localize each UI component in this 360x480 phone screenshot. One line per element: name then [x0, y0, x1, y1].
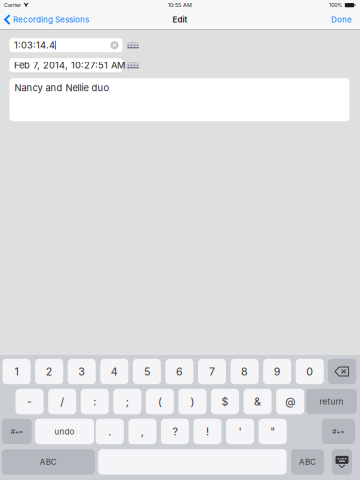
staticText: - [27, 395, 32, 408]
staticText: 1:03:14.4 [14, 40, 55, 51]
staticText: 10:55 AM [168, 2, 192, 8]
staticText: : [93, 395, 96, 408]
button[interactable]: 8 [231, 359, 259, 384]
staticText: Done [331, 15, 352, 24]
staticText: ! [206, 425, 209, 438]
button[interactable]: ! [193, 419, 221, 444]
button[interactable]: return [306, 389, 357, 414]
staticText: undo [54, 427, 74, 436]
staticText: Carrier [4, 2, 21, 8]
button[interactable]: 5 [133, 359, 161, 384]
button[interactable]: , [128, 419, 156, 444]
staticText: $ [221, 395, 228, 408]
button[interactable]: ? [161, 419, 189, 444]
staticText: ABC [299, 457, 316, 467]
staticText: 4 [111, 365, 118, 378]
staticText: ? [172, 425, 177, 438]
button[interactable]: 3 [68, 359, 96, 384]
staticText: 1 [15, 365, 19, 378]
button[interactable]: Dismiss keyboard [332, 449, 352, 475]
button[interactable]: ' [226, 419, 254, 444]
staticText: @ [285, 395, 295, 408]
button[interactable]: ABC [2, 449, 95, 475]
button[interactable]: 0 [296, 359, 324, 384]
button[interactable]: - [16, 389, 44, 414]
button[interactable]: Recording Sessions [0, 10, 95, 29]
button[interactable]: ABC [291, 449, 324, 475]
button[interactable]: Done [323, 10, 360, 29]
staticText: Nancy and Nellie duo [14, 82, 109, 93]
staticText: return [319, 397, 343, 406]
staticText: , [141, 425, 144, 438]
staticText: 6 [176, 365, 183, 378]
staticText: ) [190, 395, 194, 408]
button[interactable]: & [244, 389, 272, 414]
staticText: ' [239, 425, 242, 438]
staticText: 9 [274, 365, 281, 378]
staticText: ABC [40, 457, 57, 467]
staticText: / [60, 395, 64, 408]
staticText: 0 [306, 365, 313, 378]
staticText: ; [126, 395, 129, 408]
button[interactable]: / [48, 389, 76, 414]
button[interactable]: ( [146, 389, 174, 414]
button[interactable]: @ [276, 389, 304, 414]
staticText: 7 [209, 365, 215, 378]
staticText: ( [158, 395, 162, 408]
button[interactable]: " [259, 419, 287, 444]
staticText: 2 [46, 365, 53, 378]
button[interactable]: 1 [3, 359, 31, 384]
button[interactable]: ) [178, 389, 206, 414]
button[interactable]: Symbols [2, 419, 32, 444]
button[interactable]: . [96, 419, 124, 444]
button[interactable]: ; [113, 389, 141, 414]
button[interactable]: Symbols [322, 419, 355, 444]
staticText: Recording Sessions [13, 15, 89, 24]
staticText: . [108, 425, 111, 438]
staticText: 5 [144, 365, 150, 378]
staticText: #+= [11, 427, 23, 436]
button[interactable]: 4 [100, 359, 128, 384]
button[interactable]: 6 [165, 359, 193, 384]
button[interactable]: undo [35, 419, 94, 444]
staticText: 8 [241, 365, 248, 378]
staticText: #+= [332, 427, 344, 436]
button[interactable]: 7 [198, 359, 226, 384]
staticText: & [254, 395, 261, 408]
button[interactable]: 2 [35, 359, 63, 384]
staticText: 100% [329, 2, 342, 8]
button[interactable]: 9 [263, 359, 291, 384]
staticText: Feb 7, 2014, 10:27:51 AM [14, 60, 125, 71]
button[interactable] [98, 449, 287, 475]
staticText: Edit [172, 15, 187, 24]
staticText: 3 [78, 365, 85, 378]
button[interactable]: $ [211, 389, 239, 414]
button[interactable]: : [81, 389, 109, 414]
button[interactable]: Delete [328, 359, 356, 384]
staticText: " [270, 425, 275, 438]
